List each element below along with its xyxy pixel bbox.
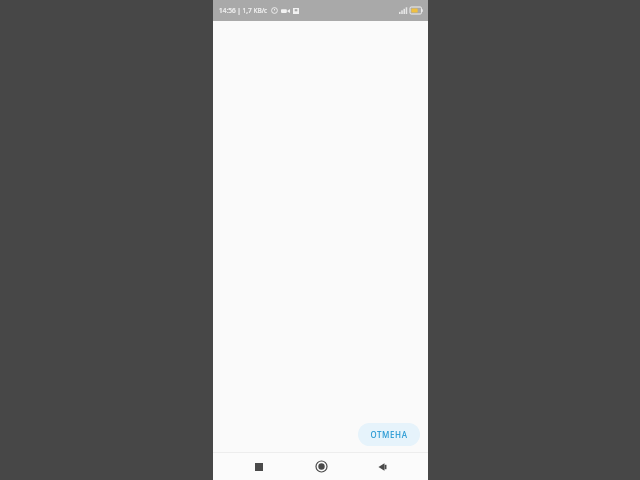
button[interactable]: ОТМЕНА bbox=[358, 423, 420, 446]
staticText: ОТМЕНА bbox=[370, 429, 408, 440]
button[interactable]: Recents bbox=[244, 453, 274, 480]
button[interactable]: Back bbox=[367, 453, 397, 480]
staticText: 14:56 | 1,7 KB/c bbox=[219, 6, 268, 15]
button[interactable]: Home bbox=[306, 453, 336, 480]
